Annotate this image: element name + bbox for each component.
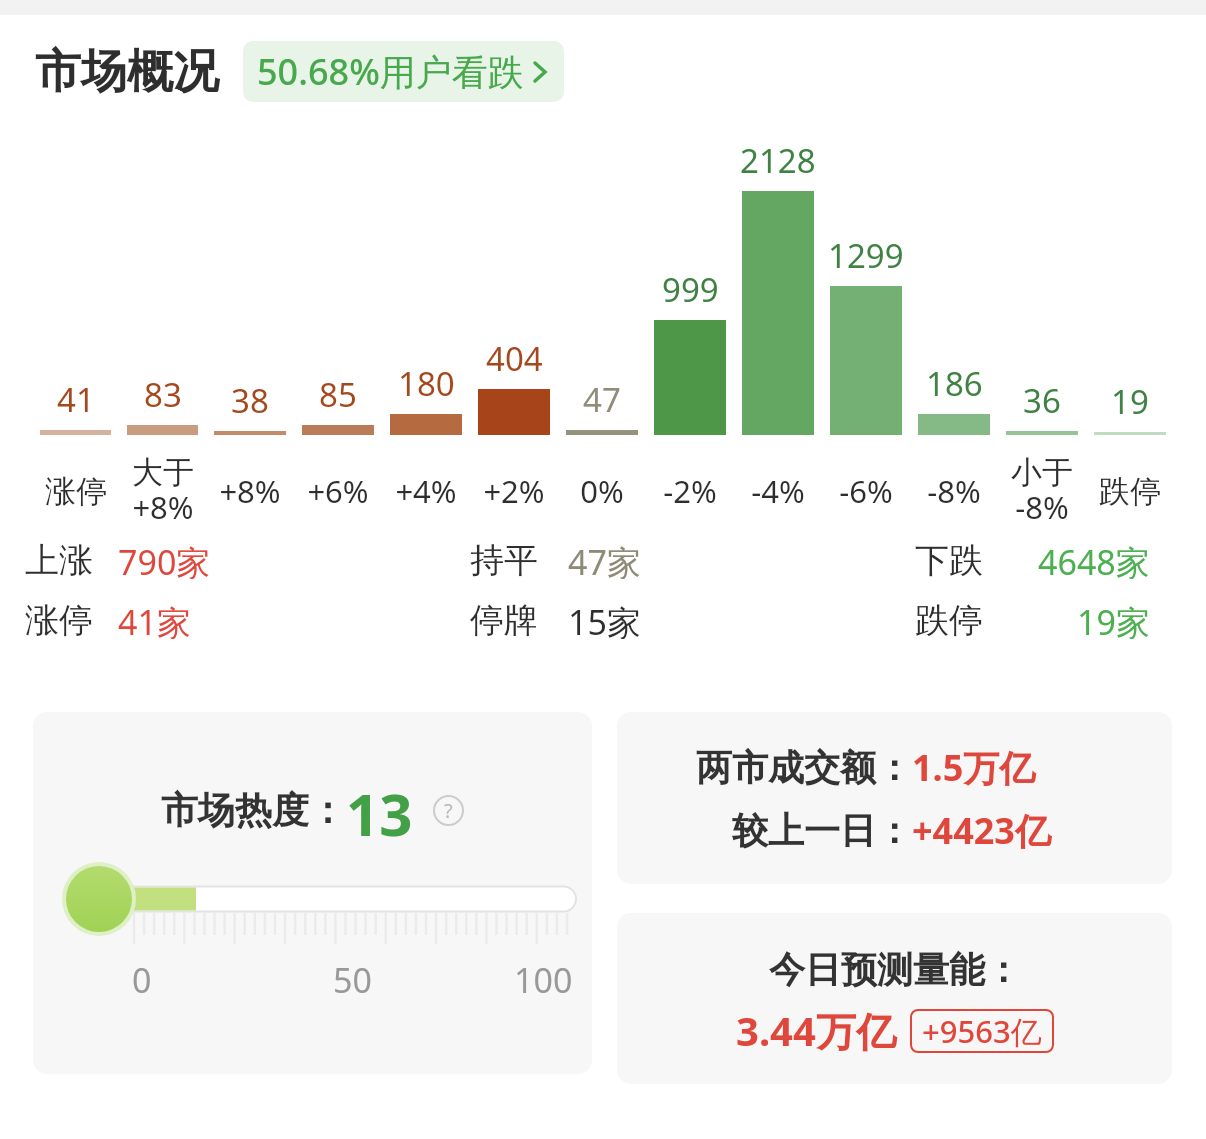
- staticText: 停牌: [470, 599, 538, 639]
- staticText: 持平: [470, 539, 538, 579]
- staticText: 0%: [580, 470, 624, 512]
- staticText: -8%: [927, 470, 981, 512]
- button[interactable]: ?: [433, 795, 464, 826]
- staticText: 404: [486, 336, 543, 381]
- staticText: +2%: [483, 470, 545, 512]
- staticText: 186: [926, 361, 983, 406]
- staticText: 19: [1111, 379, 1149, 424]
- staticText: +8%: [219, 470, 281, 512]
- staticText: 47: [583, 377, 621, 422]
- staticText: 市场概况: [35, 43, 219, 101]
- staticText: 38: [231, 378, 269, 423]
- staticText: 50: [333, 957, 372, 997]
- staticText: 790家: [118, 539, 211, 579]
- staticText: +9563亿: [922, 1010, 1042, 1052]
- staticText: 15家: [568, 599, 641, 639]
- staticText: 180: [398, 361, 455, 406]
- staticText: -2%: [663, 470, 717, 512]
- button[interactable]: 市场热度：: [33, 712, 592, 1074]
- staticText: 50.68%用户看跌: [257, 47, 524, 96]
- staticText: 市场热度：: [161, 787, 346, 834]
- staticText: 涨停: [25, 599, 93, 639]
- staticText: 两市成交额：: [696, 745, 912, 790]
- staticText: 41: [57, 377, 95, 422]
- staticText: 小于 -8%: [1011, 453, 1073, 529]
- staticText: 13: [346, 774, 413, 846]
- staticText: 36: [1023, 378, 1061, 423]
- staticText: 999: [662, 267, 719, 312]
- staticText: +4423亿: [912, 806, 1051, 855]
- staticText: 跌停: [915, 599, 983, 639]
- staticText: 1299: [828, 233, 904, 278]
- staticText: 1.5万亿: [912, 743, 1036, 792]
- staticText: 涨停: [45, 472, 107, 511]
- staticText: 4648家: [1038, 539, 1150, 579]
- staticText: +6%: [307, 470, 369, 512]
- staticText: 47家: [568, 539, 641, 579]
- staticText: 跌停: [1099, 472, 1161, 511]
- staticText: -6%: [839, 470, 893, 512]
- staticText: 2128: [740, 138, 816, 183]
- button[interactable]: 两市成交额：: [617, 712, 1172, 884]
- staticText: 下跌: [915, 539, 983, 579]
- staticText: 大于 +8%: [132, 453, 194, 529]
- staticText: +4%: [395, 470, 457, 512]
- staticText: 83: [144, 372, 182, 417]
- staticText: 0: [132, 957, 152, 997]
- staticText: 100: [514, 957, 573, 997]
- staticText: 85: [319, 372, 357, 417]
- staticText: 今日预测量能：: [769, 947, 1021, 992]
- staticText: ?: [444, 797, 453, 824]
- button[interactable]: 今日预测量能：: [617, 913, 1172, 1084]
- staticText: 上涨: [25, 539, 93, 579]
- staticText: 较上一日：: [732, 808, 912, 853]
- staticText: 41家: [118, 599, 191, 639]
- staticText: 3.44万亿: [736, 1003, 896, 1058]
- button[interactable]: 50.68%用户看跌: [243, 41, 564, 102]
- staticText: -4%: [751, 470, 805, 512]
- staticText: 19家: [1077, 599, 1150, 639]
